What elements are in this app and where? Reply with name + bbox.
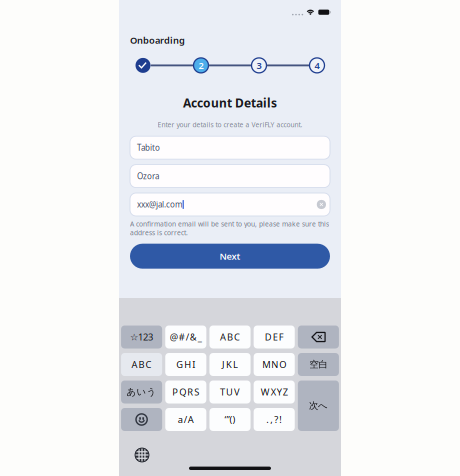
staticText: あいう bbox=[127, 386, 157, 398]
staticText: Next bbox=[219, 250, 240, 262]
button[interactable]: Emoji bbox=[121, 408, 162, 431]
button[interactable]: 空白 bbox=[298, 353, 339, 376]
button[interactable]: Next bbox=[130, 244, 330, 269]
button[interactable]: .,?! bbox=[254, 408, 295, 431]
staticText: a / A bbox=[178, 413, 194, 426]
button[interactable]: Delete bbox=[298, 325, 339, 348]
button[interactable]: ABC bbox=[209, 325, 250, 348]
staticText: 3 bbox=[256, 59, 261, 72]
staticText: Account Details bbox=[183, 95, 277, 111]
staticText: A B C bbox=[132, 358, 152, 371]
button[interactable]: WXYZ bbox=[254, 380, 295, 403]
staticText: 次へ bbox=[309, 400, 328, 411]
staticText: Onboarding bbox=[130, 34, 185, 46]
staticText: A B C bbox=[220, 331, 240, 343]
button[interactable]: 次へ bbox=[298, 380, 339, 431]
staticText: . , ? ! bbox=[266, 413, 282, 426]
staticText: ☆123 bbox=[130, 331, 153, 343]
button[interactable]: @#/&_ bbox=[165, 325, 206, 348]
staticText: D E F bbox=[265, 331, 284, 343]
button[interactable]: PQRS bbox=[165, 380, 206, 403]
staticText: ‘”() bbox=[224, 413, 235, 426]
button[interactable]: TUV bbox=[209, 380, 250, 403]
button[interactable]: a/A bbox=[165, 408, 206, 431]
button[interactable]: MNO bbox=[254, 353, 295, 376]
button[interactable]: ☆123 bbox=[121, 325, 162, 348]
staticText: Tabito bbox=[137, 142, 160, 153]
button[interactable]: DEF bbox=[254, 325, 295, 348]
staticText: Ozora bbox=[137, 171, 159, 181]
staticText: M N O bbox=[262, 358, 286, 371]
button[interactable]: ABC bbox=[121, 353, 162, 376]
staticText: 空白 bbox=[309, 359, 327, 370]
staticText: @ # / & _ bbox=[170, 331, 202, 343]
staticText: Enter your details to create a VeriFLY a… bbox=[157, 120, 302, 129]
button[interactable]: Switch keyboard bbox=[129, 445, 155, 465]
button[interactable]: ‘”() bbox=[209, 408, 250, 431]
button[interactable]: Tabito bbox=[130, 136, 330, 159]
button[interactable]: あいう bbox=[121, 380, 162, 403]
staticText: 2 bbox=[198, 59, 203, 72]
staticText: A confirmation email will be sent to you… bbox=[130, 219, 329, 237]
button[interactable]: GHI bbox=[165, 353, 206, 376]
staticText: xxx@jal.com bbox=[137, 199, 182, 210]
staticText: 4 bbox=[314, 59, 319, 72]
staticText: G H I bbox=[176, 358, 195, 371]
staticText: T U V bbox=[220, 386, 240, 398]
staticText: P Q R S bbox=[172, 386, 199, 398]
staticText: J K L bbox=[222, 358, 238, 371]
staticText: W X Y Z bbox=[261, 386, 288, 398]
button[interactable]: xxx@jal.com bbox=[130, 193, 330, 216]
button[interactable]: Ozora bbox=[130, 165, 330, 188]
button[interactable]: JKL bbox=[209, 353, 250, 376]
